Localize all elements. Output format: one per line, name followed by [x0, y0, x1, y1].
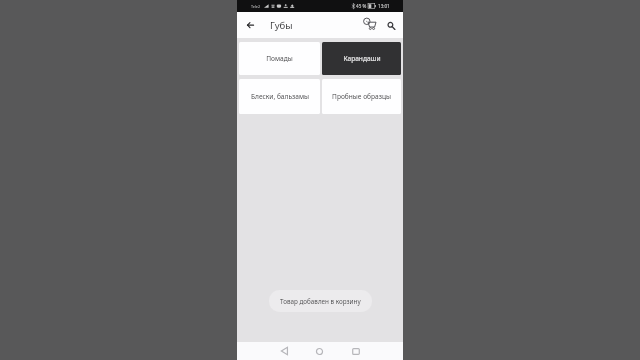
staticText: Губы [270, 19, 293, 32]
button[interactable]: Recents [342, 342, 369, 360]
button[interactable]: Карандаши [322, 42, 401, 75]
button[interactable]: Cart [356, 11, 383, 37]
staticText: Товар добавлен в корзину [280, 297, 361, 306]
staticText: 45 % [356, 3, 367, 9]
button[interactable]: Search [379, 13, 404, 39]
button[interactable]: Пробные образцы [322, 79, 401, 114]
staticText: Tele2 [251, 4, 261, 9]
staticText: Пробные образцы [332, 92, 391, 101]
staticText: Блески, бальзамы [251, 92, 309, 101]
button[interactable]: Помады [239, 42, 320, 75]
button[interactable]: Блески, бальзамы [239, 79, 320, 114]
button[interactable]: Товар добавлен в корзину [269, 290, 372, 312]
button[interactable]: Back [271, 342, 298, 360]
button[interactable]: Home [306, 342, 333, 360]
staticText: Помады [266, 54, 293, 63]
staticText: Карандаши [343, 54, 381, 63]
button[interactable]: Back [242, 12, 259, 38]
staticText: 13:01 [378, 3, 390, 9]
